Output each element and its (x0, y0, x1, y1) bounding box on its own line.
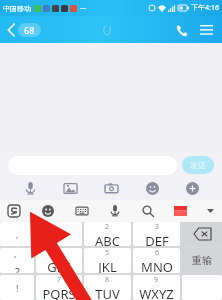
staticText: 9 (154, 275, 159, 285)
staticText: 2 (105, 222, 110, 232)
button[interactable]: Emoji (141, 178, 163, 198)
staticText: 68 (24, 24, 35, 36)
staticText: 4 (57, 248, 62, 258)
button[interactable]: Voice input (105, 201, 125, 221)
staticText: TUV (95, 285, 120, 300)
button[interactable]: Sogou (4, 201, 24, 221)
button[interactable]: Theme (171, 202, 189, 220)
staticText: 重输 (192, 254, 212, 267)
button[interactable]: 4 (36, 248, 82, 273)
staticText: 7 (57, 275, 62, 285)
button[interactable]: 7 (36, 275, 82, 300)
button[interactable]: 6 (133, 248, 180, 273)
staticText: ! (16, 282, 19, 294)
staticText: , (16, 228, 19, 240)
staticText: WXYZ (139, 285, 174, 300)
button[interactable]: ! (0, 275, 34, 300)
staticText: 6 (155, 248, 160, 258)
staticText: ABC (95, 232, 120, 246)
staticText: 5 (105, 248, 110, 258)
button[interactable]: Back, 68 unread (5, 21, 43, 39)
button[interactable]: Listen (100, 23, 114, 37)
button[interactable]: More (181, 178, 203, 198)
staticText: GHI (47, 258, 71, 273)
button[interactable]: Delete (182, 222, 222, 246)
button[interactable]: Menu (193, 17, 219, 43)
staticText: 1 (55, 225, 63, 243)
button[interactable]: 1 (36, 222, 82, 246)
staticText: MNO (141, 258, 173, 273)
button[interactable]: 发送 (182, 156, 214, 174)
staticText: DEF (145, 232, 169, 246)
button[interactable]: 9 (133, 275, 180, 300)
button[interactable]: Search (138, 201, 158, 221)
button[interactable]: 。 (0, 248, 34, 273)
button[interactable]: Emoji (38, 201, 58, 221)
button[interactable]: Collapse (202, 203, 218, 219)
staticText: PQRS (42, 285, 76, 300)
button[interactable]: , (0, 222, 34, 246)
button[interactable]: Voice (19, 178, 41, 198)
staticText: 下午4:16 (191, 3, 219, 13)
staticText: 。 (13, 248, 22, 259)
button[interactable]: Gallery (59, 178, 81, 198)
staticText: 发送 (190, 160, 206, 170)
button[interactable]: Call (171, 19, 193, 41)
staticText: ? (15, 264, 20, 273)
button[interactable]: 5 (84, 248, 131, 273)
button[interactable]: 2 (84, 222, 131, 246)
staticText: JKL (98, 258, 117, 273)
staticText: 3 (155, 222, 160, 232)
staticText: 8 (105, 275, 110, 285)
staticText: 中国移动 (3, 4, 31, 13)
button[interactable]: 3 (133, 222, 180, 246)
button[interactable]: 重输 (182, 248, 222, 273)
button[interactable]: Keyboard layout (72, 201, 92, 221)
button[interactable]: 8 (84, 275, 131, 300)
button[interactable]: Camera (100, 178, 122, 198)
